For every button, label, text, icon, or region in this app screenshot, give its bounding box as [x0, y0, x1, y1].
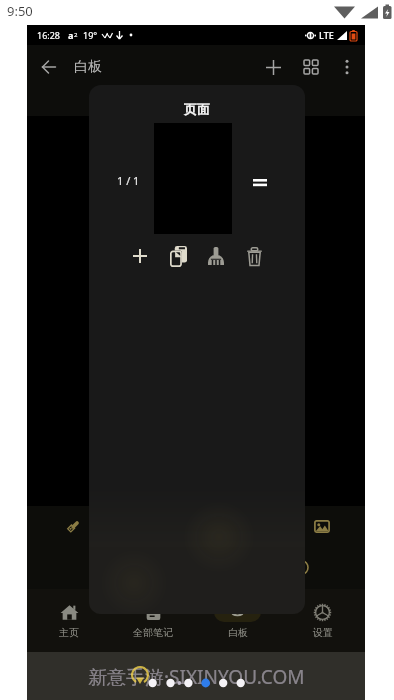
button[interactable]: More options	[329, 49, 365, 85]
button[interactable]: Delete page	[235, 237, 273, 275]
button[interactable]: 主页	[27, 589, 111, 652]
button[interactable]: Insert image	[307, 511, 337, 541]
staticText: 9:50	[7, 2, 33, 20]
button[interactable]: Add	[253, 47, 293, 87]
staticText: LTE	[319, 29, 334, 41]
button[interactable]: Pen	[57, 512, 87, 542]
button[interactable]: Back	[27, 45, 71, 89]
button[interactable]: 设置	[280, 589, 365, 652]
staticText: 新意手游·SIXINYOU.COM	[88, 664, 305, 690]
staticText: a	[68, 29, 74, 41]
button[interactable]: 白板	[195, 589, 280, 652]
staticText: 2	[74, 31, 78, 39]
button[interactable]: Duplicate page	[159, 237, 197, 275]
button[interactable]: Add page	[121, 237, 159, 275]
staticText: 页面	[184, 101, 210, 117]
staticText: 16:28	[37, 29, 61, 41]
button[interactable]: Clear page	[197, 237, 235, 275]
staticText: 1 / 1	[117, 173, 140, 188]
staticText: 白板	[228, 626, 248, 639]
button[interactable]: 全部笔记	[111, 589, 195, 652]
staticText: 全部笔记	[133, 626, 173, 639]
button[interactable]: Grid view	[293, 49, 329, 85]
staticText: 主页	[59, 626, 79, 639]
staticText: 19°	[83, 29, 98, 41]
staticText: 设置	[313, 626, 333, 639]
staticText: 白板	[74, 58, 102, 76]
button[interactable]: Reorder pages	[246, 168, 274, 196]
